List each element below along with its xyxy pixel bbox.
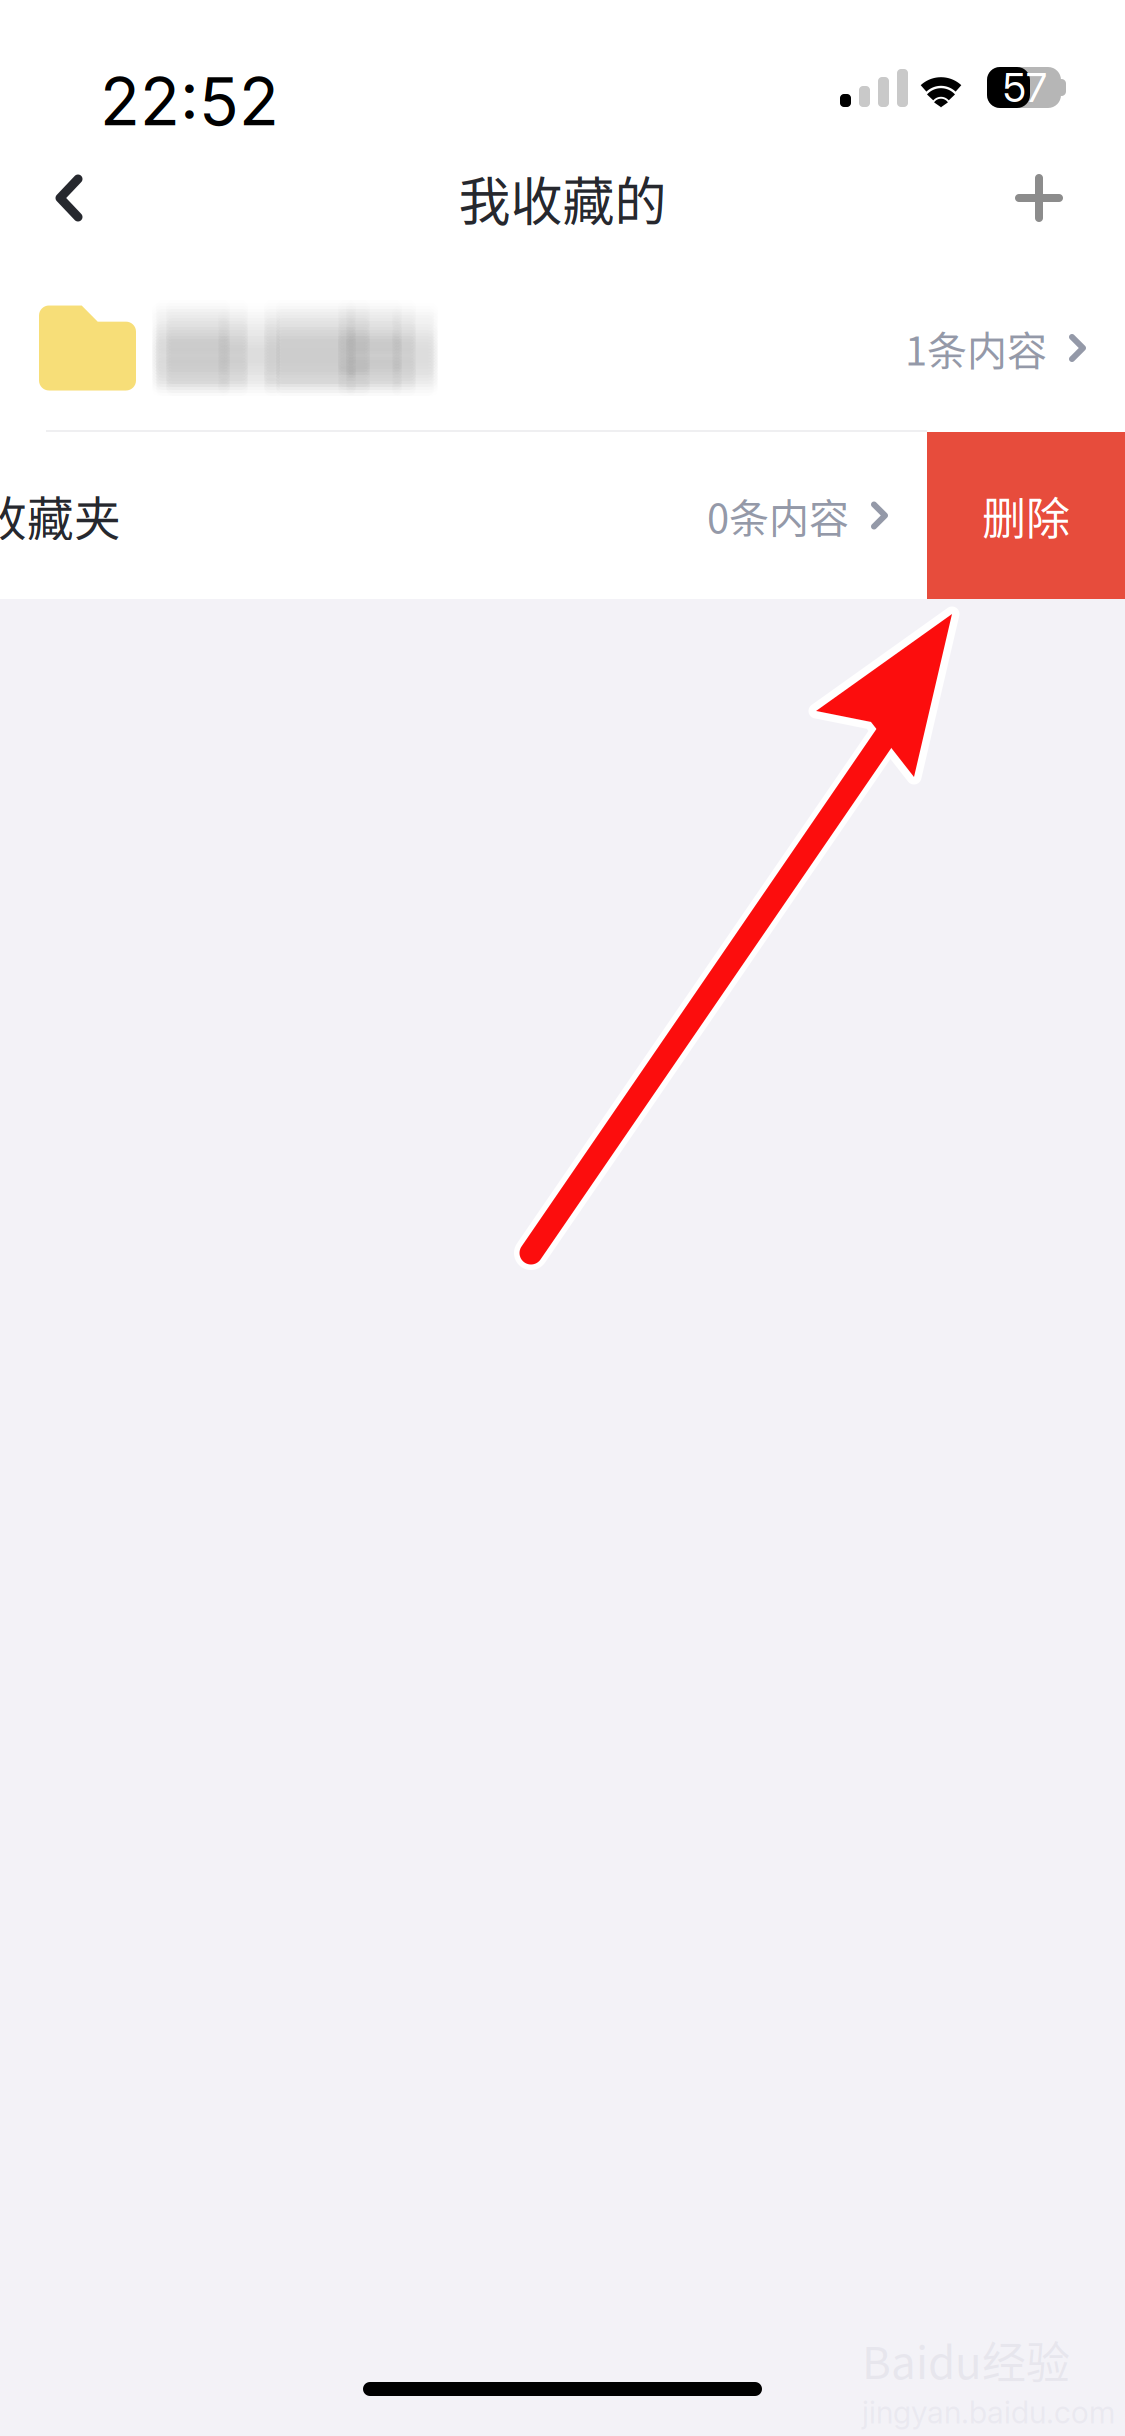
staticText: 1条内容: [905, 319, 1047, 377]
button[interactable]: Back: [24, 150, 114, 246]
staticText: 57: [1003, 63, 1047, 112]
staticText: 0条内容: [707, 486, 849, 544]
button[interactable]: 我的收藏夹: [0, 432, 927, 599]
staticText: 我收藏的: [458, 160, 666, 236]
button[interactable]: 删除: [927, 432, 1125, 599]
staticText: 我的收藏夹: [0, 482, 121, 549]
staticText: jingyan.baidu.com: [862, 2394, 1115, 2431]
staticText: 删除: [982, 484, 1070, 547]
button[interactable]: New folder: [994, 150, 1084, 246]
staticText: 22:52: [100, 62, 279, 141]
button[interactable]: 1条内容: [0, 265, 1125, 431]
staticText: Baidu经验: [862, 2328, 1070, 2392]
